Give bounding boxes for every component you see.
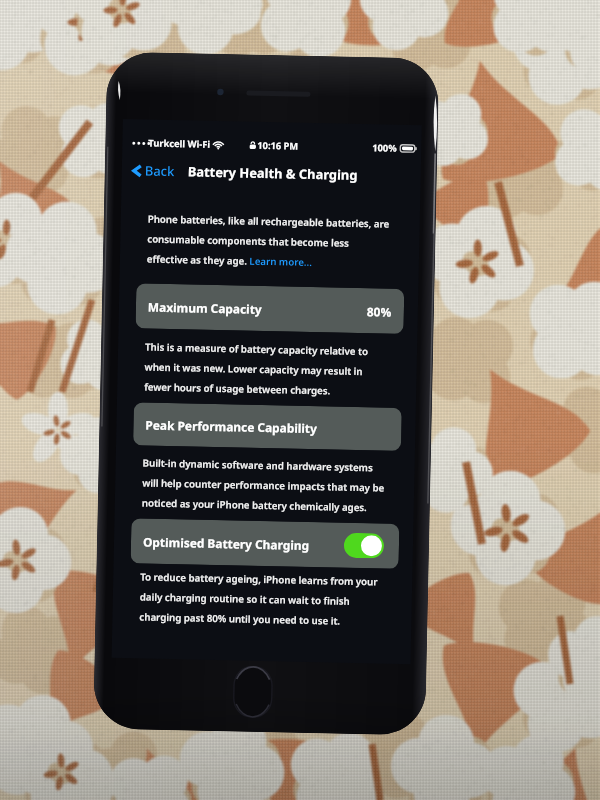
staticText: when it was new. Lower capacity may resu… <box>144 360 363 378</box>
button[interactable]: Optimised Battery Charging toggle <box>344 533 384 558</box>
staticText: consumable components that become less <box>147 232 349 250</box>
staticText: 80% <box>367 303 392 320</box>
staticText: effective as they age. <box>147 252 247 268</box>
staticText: Optimised Battery Charging <box>143 533 310 553</box>
staticText: daily charging routine so it can wait to… <box>140 590 350 608</box>
staticText: Phone batteries, like all rechargeable b… <box>148 212 390 231</box>
staticText: Battery Health & Charging <box>188 162 358 184</box>
button[interactable]: Maximum Capacity <box>135 283 404 334</box>
button[interactable]: Optimised Battery Charging <box>131 518 399 569</box>
staticText: Turkcell Wi-Fi <box>148 136 210 151</box>
staticText: This is a measure of battery capacity re… <box>145 340 368 358</box>
staticText: To reduce battery ageing, iPhone learns … <box>140 570 378 588</box>
staticText: 100% <box>372 141 397 155</box>
staticText: Back <box>145 161 175 180</box>
staticText: charging past 80% until you need to use … <box>139 610 340 628</box>
button[interactable]: Learn more... <box>247 255 313 269</box>
button[interactable]: Back <box>133 161 175 180</box>
staticText: Built-in dynamic software and hardware s… <box>142 456 374 474</box>
staticText: Peak Performance Capability <box>145 416 318 436</box>
staticText: Maximum Capacity <box>148 299 262 317</box>
button[interactable]: Peak Performance Capability <box>133 402 402 451</box>
staticText: 10:16 PM <box>257 139 298 153</box>
staticText: will help counter performance impacts th… <box>142 476 385 495</box>
staticText: fewer hours of usage between charges. <box>144 380 331 397</box>
staticText: noticed as your iPhone battery chemicall… <box>142 496 368 514</box>
